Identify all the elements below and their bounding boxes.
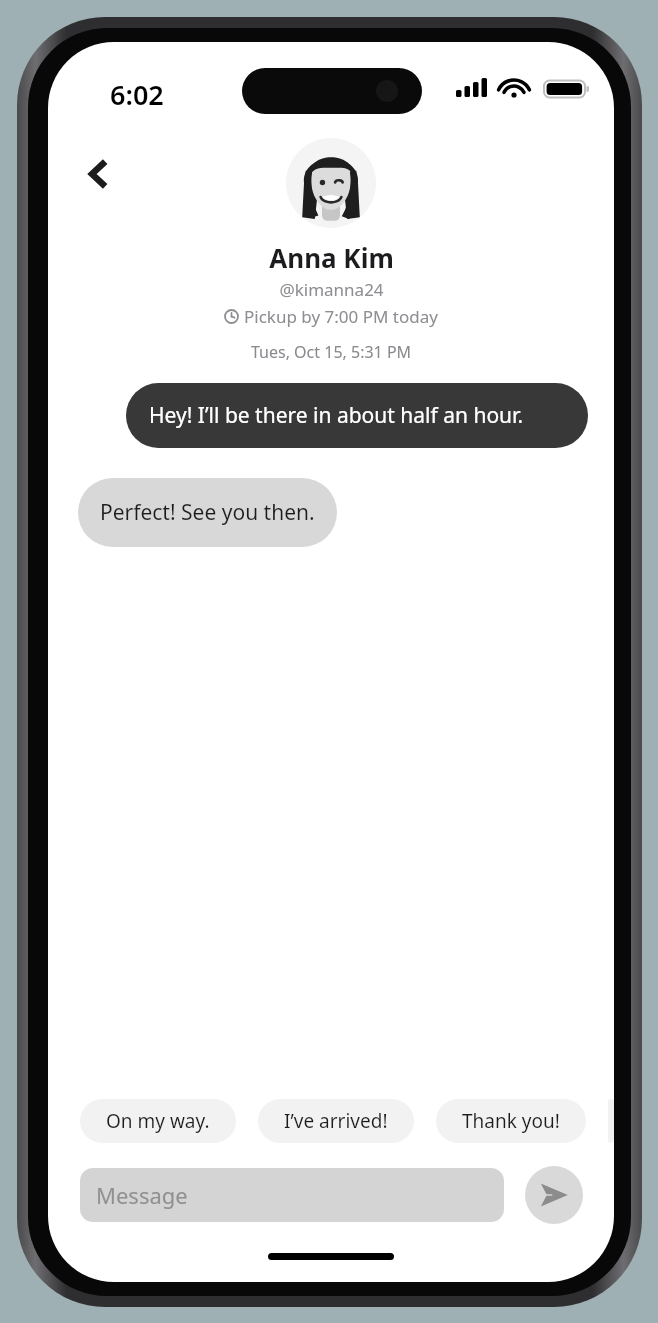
button[interactable]: Thank you!: [436, 1099, 586, 1143]
staticText: Perfect! See you then.: [100, 498, 315, 527]
staticText: Message: [96, 1180, 188, 1210]
button[interactable]: Hey! I’ll be there in about half an hour…: [126, 383, 588, 448]
button[interactable]: On my way.: [80, 1099, 236, 1143]
staticText: @kimanna24: [279, 278, 384, 301]
staticText: Tues, Oct 15, 5:31 PM: [251, 341, 412, 363]
staticText: Hey! I’ll be there in about half an hour…: [149, 401, 524, 430]
staticText: I’ve arrived!: [284, 1108, 388, 1134]
staticText: Thank you!: [462, 1108, 560, 1134]
button[interactable]: I’ve arrived!: [258, 1099, 414, 1143]
button[interactable]: Perfect! See you then.: [78, 478, 337, 547]
button[interactable]: Back: [70, 146, 126, 202]
staticText: Anna Kim: [269, 240, 394, 275]
staticText: 6:02: [110, 76, 164, 113]
button[interactable]: Anna Kim profile photo: [286, 138, 376, 228]
button[interactable]: Send: [525, 1166, 583, 1224]
button[interactable]: Message: [80, 1168, 504, 1222]
staticText: On my way.: [106, 1108, 210, 1134]
staticText: Pickup by 7:00 PM today: [244, 305, 438, 328]
